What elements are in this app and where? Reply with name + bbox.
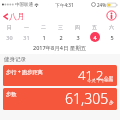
- staticText: 41.2: [78, 66, 104, 84]
- staticText: 步数: [6, 91, 17, 98]
- button[interactable]: 3: [69, 31, 86, 43]
- button[interactable]: 个人资料: [106, 10, 117, 21]
- staticText: 五: [92, 24, 97, 30]
- staticText: 24%: [97, 2, 106, 8]
- staticText: 中国联通: [15, 2, 33, 8]
- button[interactable]: 31: [18, 31, 35, 43]
- button[interactable]: 2: [52, 31, 69, 43]
- button[interactable]: 4: [86, 31, 103, 43]
- staticText: 今天 下午4:30: [87, 78, 114, 84]
- button[interactable]: 步数: [3, 88, 117, 110]
- staticText: 八月: [9, 11, 25, 21]
- staticText: 公里: [104, 76, 114, 82]
- staticText: 下午4:31: [55, 2, 74, 8]
- staticText: 3: [76, 34, 80, 41]
- button[interactable]: 步行 + 跑步距离: [3, 65, 117, 86]
- staticText: 日: [7, 24, 12, 30]
- button[interactable]: 30: [0, 31, 18, 43]
- button[interactable]: 八月: [3, 11, 27, 21]
- staticText: 三: [58, 24, 63, 30]
- staticText: 步行 + 跑步距离: [6, 68, 43, 75]
- staticText: 二: [41, 24, 46, 30]
- staticText: 4: [93, 34, 97, 41]
- staticText: 六: [109, 24, 114, 30]
- staticText: 31: [23, 34, 30, 41]
- staticText: 一: [24, 24, 29, 30]
- staticText: 四: [75, 24, 80, 30]
- staticText: 2: [59, 34, 63, 41]
- staticText: 5: [110, 34, 114, 41]
- staticText: 2017年8月4日 星期五: [33, 44, 87, 52]
- staticText: 61,305: [65, 89, 109, 108]
- button[interactable]: 5: [103, 31, 120, 43]
- staticText: 健身记录: [4, 56, 26, 63]
- staticText: 1: [42, 34, 46, 41]
- staticText: 30: [6, 34, 13, 41]
- button[interactable]: 1: [35, 31, 52, 43]
- staticText: 步: [109, 100, 114, 106]
